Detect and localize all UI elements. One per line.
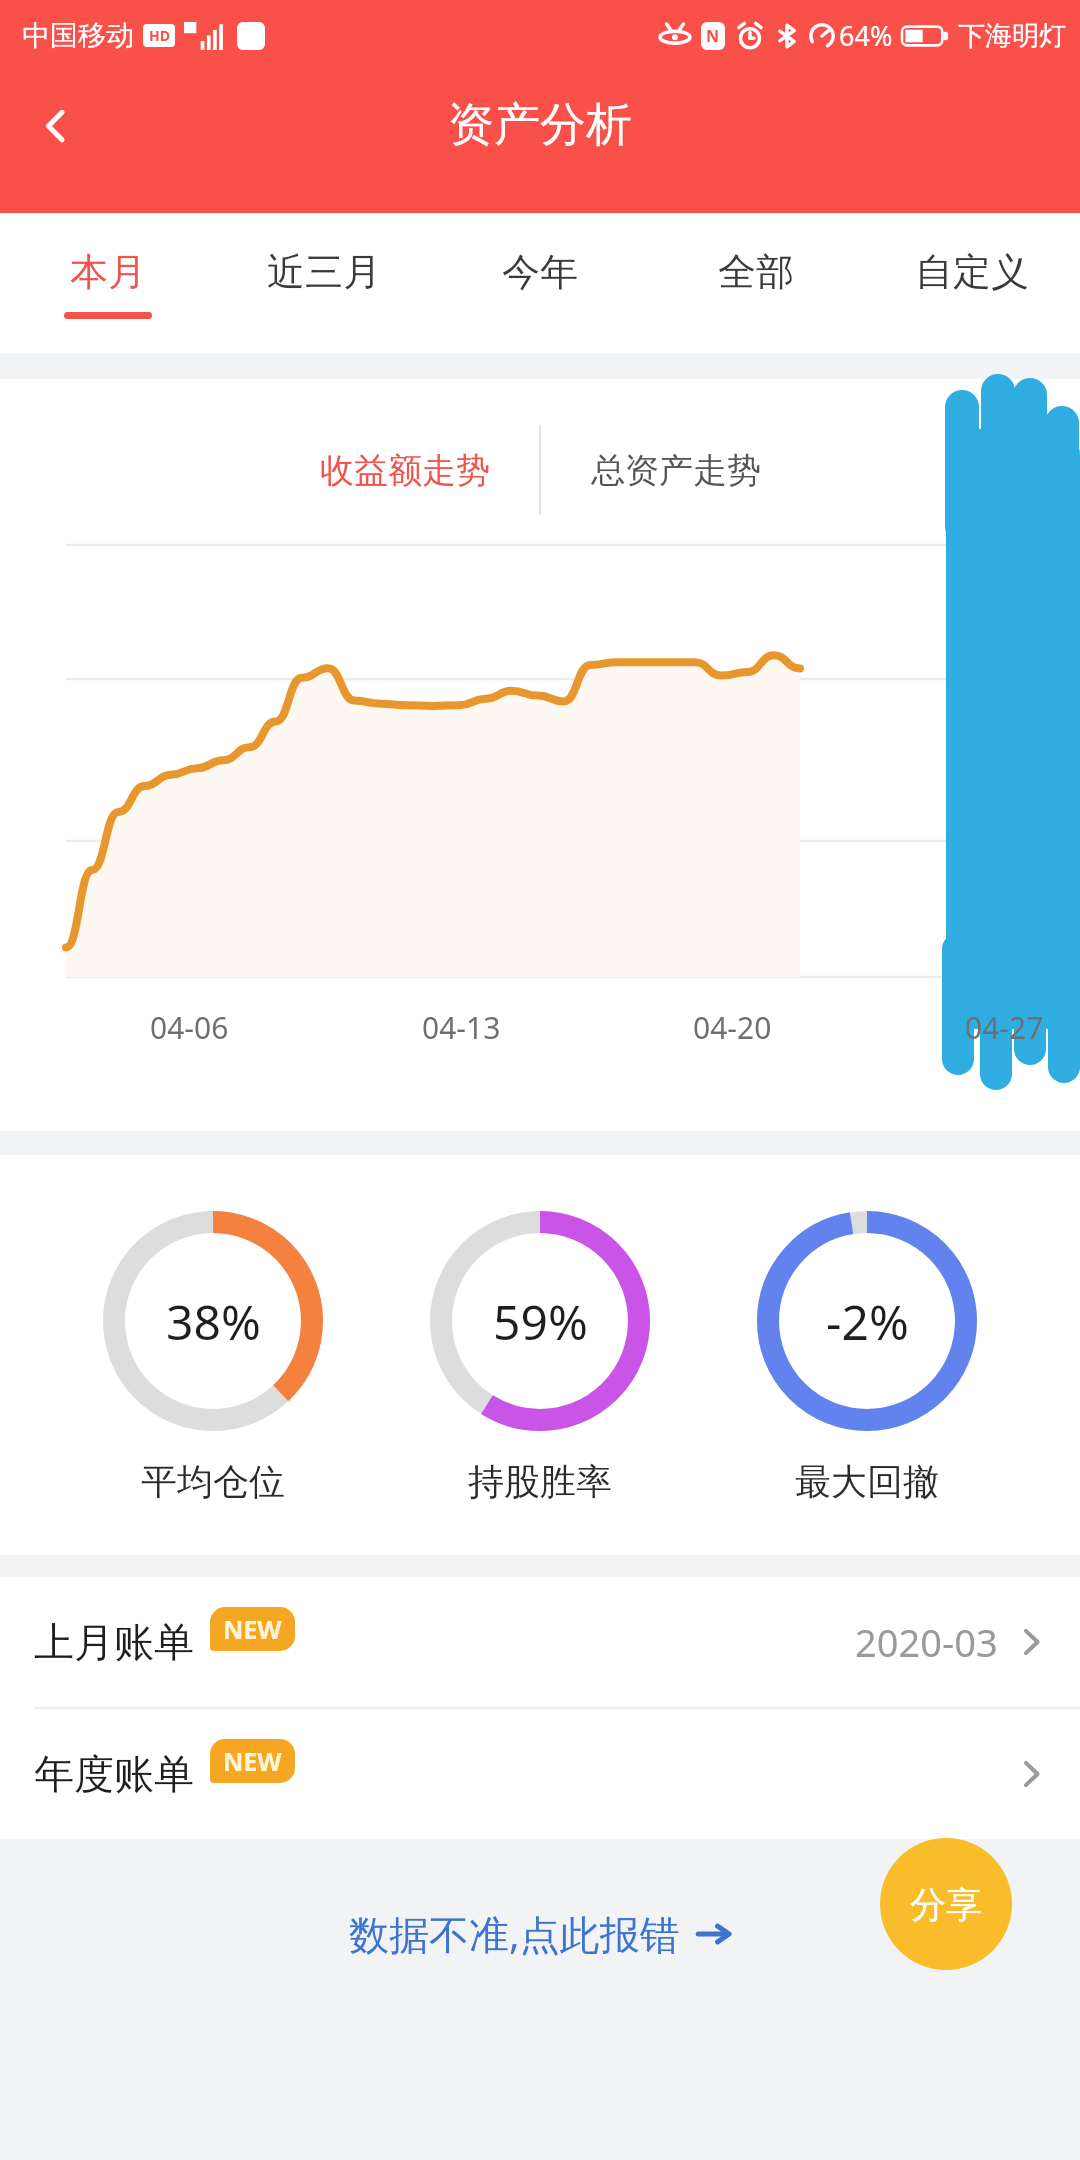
staticText: 上月账单 — [34, 1617, 194, 1667]
staticText: 分享 — [910, 1882, 982, 1927]
staticText: 59% — [493, 1289, 588, 1354]
staticText: 平均仓位 — [141, 1459, 285, 1504]
staticText: 最大回撤 — [795, 1459, 939, 1504]
button[interactable]: 近三月 — [216, 213, 432, 353]
staticText: 总资产走势 — [591, 449, 761, 492]
staticText: 64% — [839, 17, 893, 54]
staticText: 持股胜率 — [468, 1459, 612, 1504]
staticText: NEW — [223, 1744, 282, 1778]
staticText: 下海明灯 — [958, 19, 1066, 53]
staticText: -2% — [826, 1289, 909, 1354]
staticText: 38% — [166, 1289, 261, 1354]
staticText: NEW — [223, 1612, 282, 1646]
staticText: 资产分析 — [448, 96, 632, 154]
staticText: HD — [149, 26, 170, 45]
button[interactable]: 总资产走势 — [541, 425, 810, 515]
button[interactable]: 收益额走势 — [270, 425, 539, 515]
button[interactable]: 今年 — [432, 213, 648, 353]
button[interactable]: 上月账单 — [0, 1577, 1080, 1707]
staticText: 04-06 — [150, 1007, 229, 1048]
staticText: 今年 — [502, 248, 578, 296]
staticText: 近三月 — [267, 248, 381, 296]
button[interactable]: 年度账单 — [0, 1709, 1080, 1839]
staticText: 04-20 — [693, 1007, 772, 1048]
button[interactable]: 本月 — [0, 213, 216, 353]
staticText: 04-27 — [965, 1007, 1044, 1048]
staticText: 收益额走势 — [320, 449, 490, 492]
staticText: 数据不准,点此报错 — [349, 1906, 680, 1961]
staticText: 中国移动 — [22, 18, 134, 53]
staticText: 年度账单 — [34, 1749, 194, 1799]
button[interactable]: 自定义 — [864, 213, 1080, 353]
staticText: 本月 — [70, 248, 146, 296]
staticText: 全部 — [718, 248, 794, 296]
button[interactable]: 全部 — [648, 213, 864, 353]
staticText: 04-13 — [422, 1007, 501, 1048]
staticText: N — [706, 25, 720, 47]
staticText: 自定义 — [915, 248, 1029, 296]
button[interactable]: 数据不准,点此报错 — [319, 1890, 762, 1977]
button[interactable]: 返回 — [16, 86, 96, 166]
button[interactable]: 分享 — [880, 1838, 1012, 1970]
staticText: 2020-03 — [855, 1616, 998, 1668]
